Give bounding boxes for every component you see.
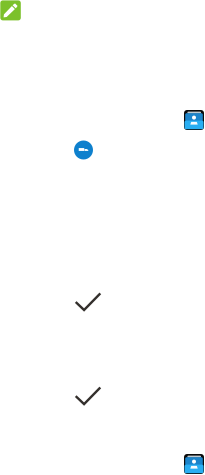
button[interactable]: Contacts (184, 454, 204, 474)
button[interactable]: Compose (0, 0, 21, 20)
button[interactable]: Delivery (74, 140, 93, 159)
button[interactable]: Contacts (184, 110, 204, 130)
